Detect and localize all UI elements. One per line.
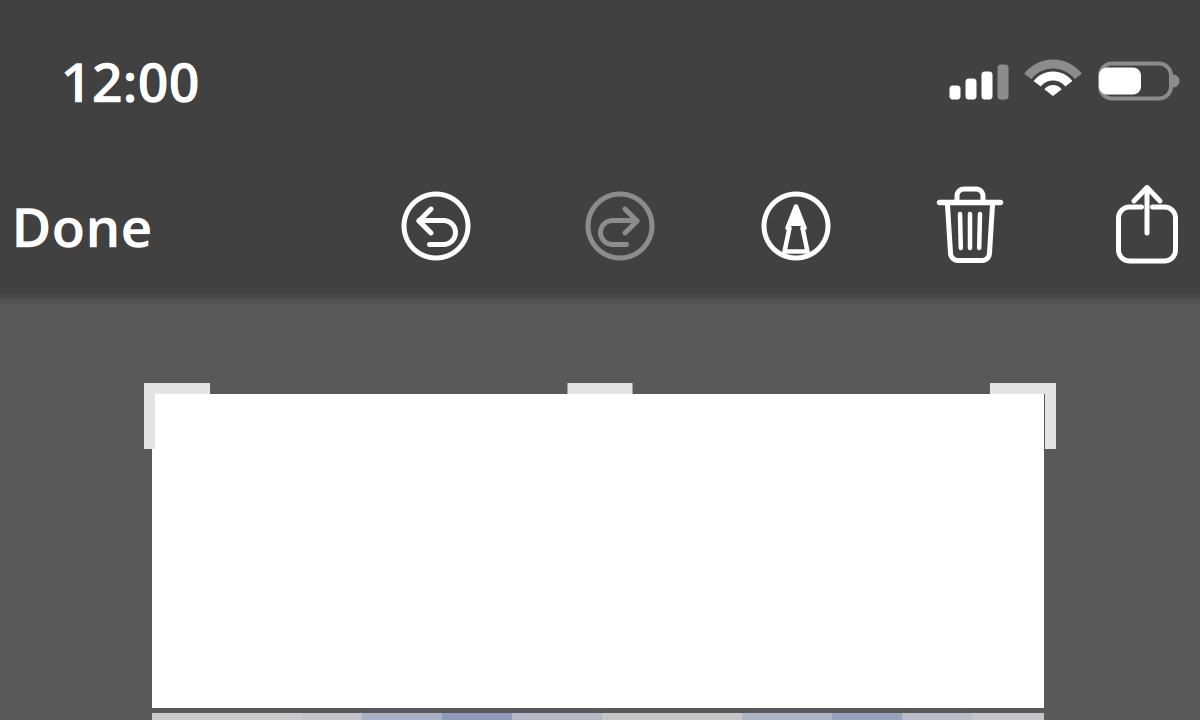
button[interactable]: Done bbox=[0, 174, 172, 278]
button[interactable]: Share bbox=[1116, 184, 1177, 264]
staticText: 12:00 bbox=[60, 45, 199, 117]
staticText: Done bbox=[11, 190, 152, 262]
button[interactable]: Redo bbox=[583, 189, 657, 263]
button[interactable]: Delete bbox=[936, 185, 1003, 265]
button[interactable]: Markup bbox=[759, 189, 833, 263]
button[interactable]: Undo bbox=[399, 189, 473, 263]
